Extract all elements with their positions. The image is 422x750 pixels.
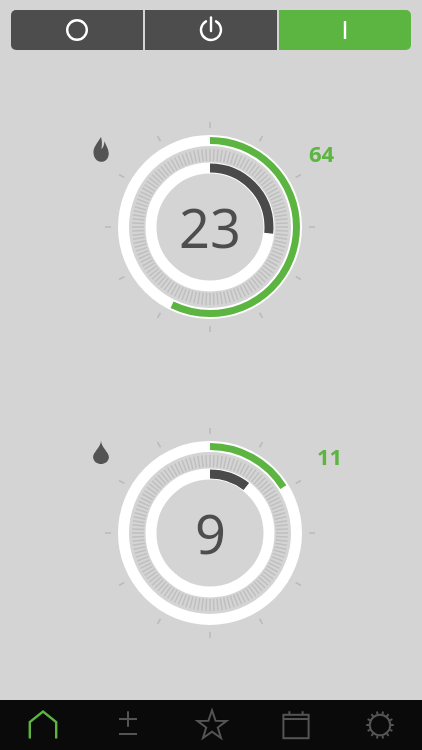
button[interactable]: 9 — [150, 495, 270, 571]
button[interactable]: Favourites — [170, 700, 254, 750]
button[interactable]: Off — [11, 10, 143, 50]
staticText: 9 — [195, 496, 226, 570]
staticText: 64 — [309, 138, 335, 168]
button[interactable]: Home — [0, 700, 85, 750]
button[interactable]: Auto — [145, 10, 277, 50]
button[interactable]: On — [279, 10, 411, 50]
button[interactable]: 23 — [150, 189, 270, 265]
staticText: 23 — [179, 190, 241, 264]
button[interactable]: Settings — [338, 700, 422, 750]
staticText: 11 — [317, 441, 343, 471]
button[interactable]: Schedule — [254, 700, 338, 750]
button[interactable]: Adjust — [85, 700, 170, 750]
